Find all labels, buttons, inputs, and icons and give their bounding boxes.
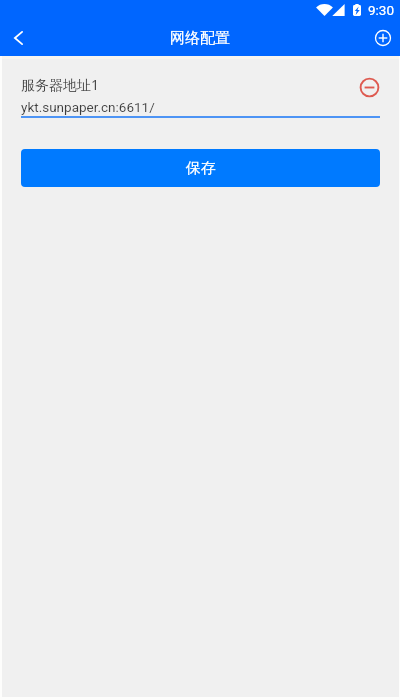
staticText: 9:30: [368, 2, 395, 18]
button[interactable]: Add: [365, 20, 400, 56]
button[interactable]: Remove server: [358, 76, 381, 99]
staticText: 网络配置: [170, 29, 230, 48]
button[interactable]: Back: [0, 20, 36, 56]
button[interactable]: ykt.sunpaper.cn:6611/: [21, 99, 380, 118]
staticText: 保存: [186, 159, 216, 178]
staticText: ykt.sunpaper.cn:6611/: [21, 99, 155, 115]
button[interactable]: 保存: [21, 149, 380, 187]
staticText: 服务器地址1: [21, 75, 100, 94]
